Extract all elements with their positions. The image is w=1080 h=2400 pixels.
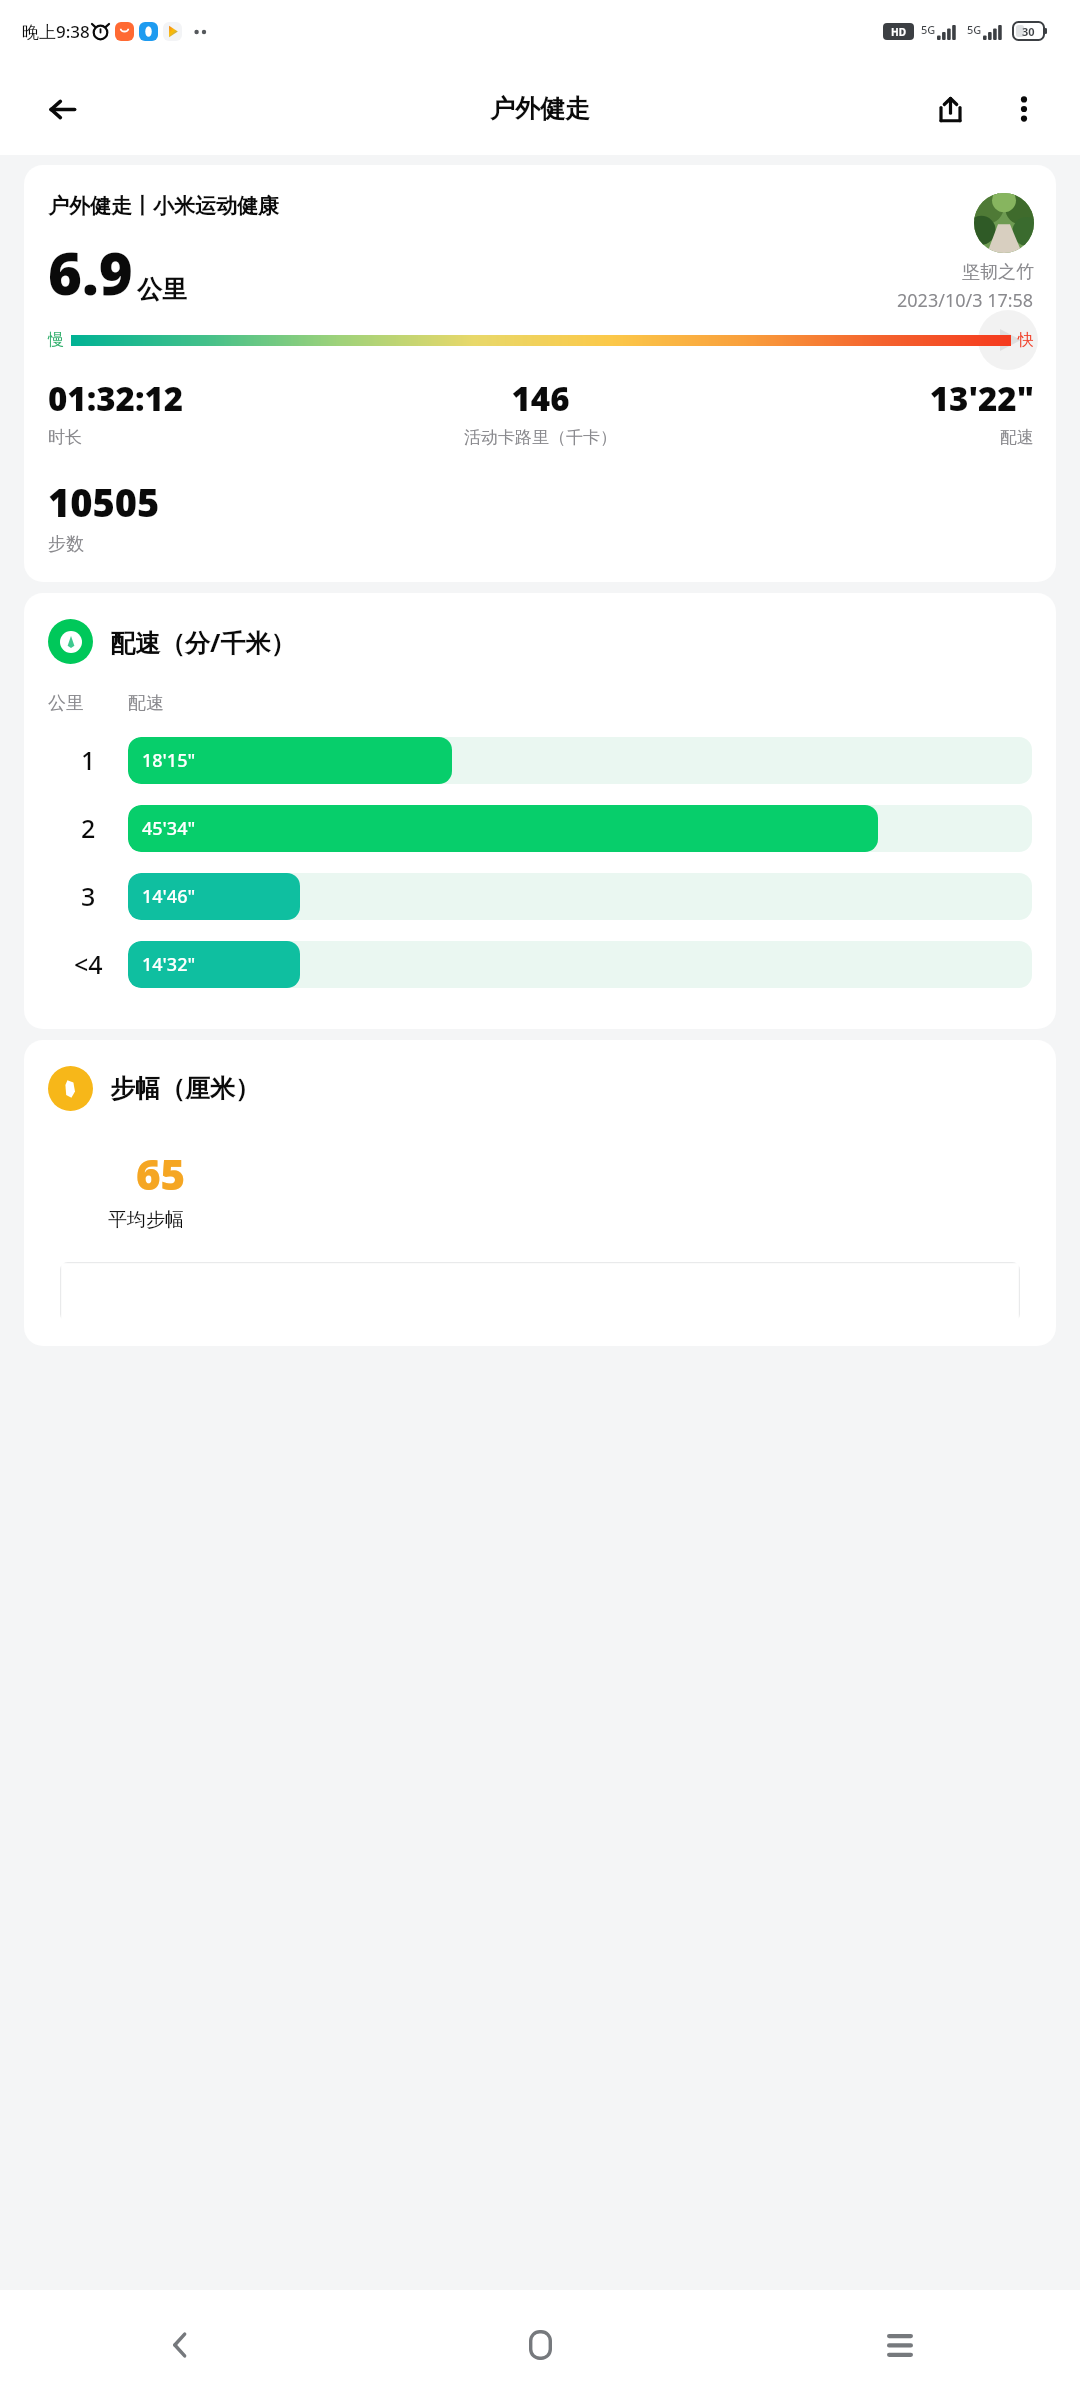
button[interactable]: 配速（分/千米） <box>24 593 1056 1029</box>
staticText: 3 <box>81 879 96 913</box>
staticText: 步幅（厘米） <box>110 1073 260 1104</box>
staticText: 公里 <box>137 274 187 305</box>
staticText: 65 <box>136 1145 186 1202</box>
staticText: 步数 <box>48 533 84 556</box>
staticText: 配速（分/千米） <box>110 625 296 659</box>
staticText: 146 <box>511 376 570 421</box>
staticText: HD <box>891 25 906 39</box>
button[interactable]: 主页 <box>360 2290 720 2400</box>
staticText: 1 <box>81 743 96 777</box>
staticText: 慢 <box>48 330 64 350</box>
staticText: 18'15" <box>142 748 196 773</box>
staticText: 活动卡路里（千卡） <box>464 427 617 448</box>
staticText: 10505 <box>48 476 160 528</box>
staticText: 晚上9:38 <box>22 20 90 43</box>
staticText: 坚韧之竹 <box>962 261 1034 284</box>
button[interactable]: 返回 <box>30 77 94 141</box>
staticText: 户外健走丨小米运动健康 <box>48 193 279 219</box>
staticText: 30 <box>1022 24 1035 39</box>
staticText: 01:32:12 <box>48 376 184 421</box>
staticText: 2 <box>81 811 96 845</box>
staticText: 2023/10/3 17:58 <box>897 288 1034 313</box>
staticText: 5G <box>921 22 936 37</box>
staticText: 配速 <box>1000 427 1034 448</box>
button[interactable]: 户外健走丨小米运动健康 <box>24 165 1056 582</box>
button[interactable]: 返回 <box>0 2290 360 2400</box>
staticText: <4 <box>74 947 103 981</box>
staticText: 平均步幅 <box>108 1208 184 1232</box>
staticText: 14'46" <box>142 884 196 909</box>
staticText: 快 <box>1018 330 1034 350</box>
button[interactable]: 步幅（厘米） <box>24 1040 1056 1346</box>
staticText: 时长 <box>48 427 82 448</box>
staticText: 6.9 <box>48 233 133 312</box>
button[interactable]: 最近任务 <box>720 2290 1080 2400</box>
button[interactable]: 分享 <box>918 77 982 141</box>
staticText: 配速 <box>128 692 164 715</box>
staticText: 5G <box>967 22 982 37</box>
staticText: 公里 <box>48 692 84 715</box>
staticText: 户外健走 <box>490 93 590 124</box>
staticText: 14'32" <box>142 952 196 977</box>
button[interactable]: 更多选项 <box>992 77 1056 141</box>
staticText: 13'22" <box>929 376 1034 421</box>
staticText: 45'34" <box>142 816 196 841</box>
